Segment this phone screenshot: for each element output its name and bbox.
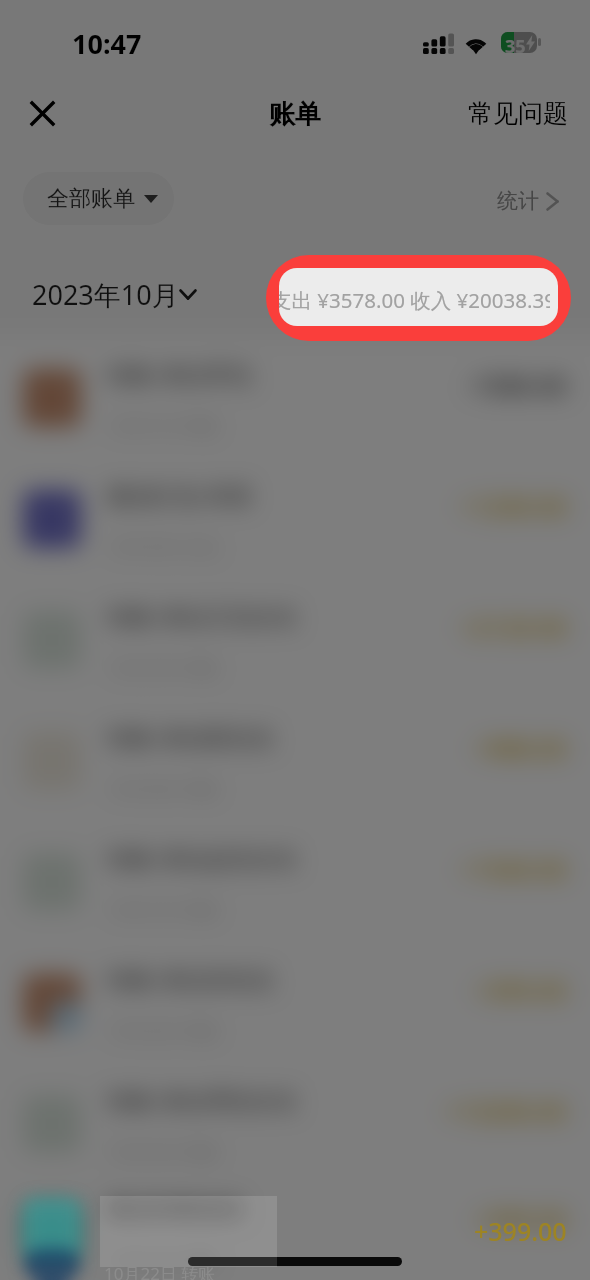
button[interactable]: 转账-来自孙先生	[0, 942, 590, 1063]
staticText: -1580.00	[466, 368, 567, 402]
staticText: +1200.00	[460, 489, 567, 523]
button[interactable]: 微信转账收款	[0, 1184, 590, 1280]
staticText: 微信红包-恭喜	[107, 479, 253, 510]
staticText: +13200.00	[445, 1094, 567, 1128]
staticText: 转账-来自李先	[107, 358, 253, 389]
staticText: 账单	[269, 98, 321, 131]
staticText: 常见问题	[468, 98, 568, 129]
staticText: 全部账单	[47, 185, 135, 213]
staticText: 微信转账收款	[107, 1194, 245, 1223]
button[interactable]: 统计	[493, 184, 563, 218]
staticText: 支出 ¥3578.00 收入 ¥20038.39	[279, 286, 550, 314]
staticText: +399.00	[474, 1202, 567, 1236]
button[interactable]: 转账-来自赵先生生	[0, 821, 590, 942]
staticText: 统计	[497, 188, 539, 214]
staticText: 10:47	[72, 25, 142, 62]
staticText: 35	[505, 34, 526, 55]
button[interactable]: 微信红包-恭喜	[0, 458, 590, 579]
staticText: +2120.00	[460, 610, 567, 644]
button[interactable]: 2023年10月	[32, 276, 197, 313]
button[interactable]: Close	[18, 89, 66, 137]
button[interactable]: 转账-来自李先	[0, 337, 590, 458]
staticText: 10月22日 转账	[107, 1248, 219, 1271]
staticText: +988.00	[474, 731, 567, 765]
staticText: 转账-来自陈先生	[107, 721, 276, 752]
button[interactable]: 全部账单	[23, 172, 174, 225]
button[interactable]: 转账-来自周先生生	[0, 1063, 590, 1184]
staticText: +1560.00	[460, 852, 567, 886]
staticText: 转账-来自周先生生	[107, 1084, 299, 1115]
staticText: +399.00	[474, 973, 567, 1007]
staticText: 转账-来自孙先生	[107, 963, 276, 994]
button[interactable]: 转账-来自王先生生	[0, 579, 590, 700]
staticText: 转账-来自赵先生生	[107, 842, 299, 873]
staticText: 10月22日 转账	[104, 1262, 216, 1280]
staticText: +399.00	[474, 1214, 567, 1248]
button[interactable]: 转账-来自陈先生	[0, 700, 590, 821]
staticText: 转账-来自王先生生	[107, 600, 299, 631]
staticText: 2023年10月	[32, 276, 179, 313]
button[interactable]: 常见问题	[462, 92, 574, 135]
staticText: 支出 ¥3578.00 收入 ¥20038.39	[271, 287, 556, 315]
